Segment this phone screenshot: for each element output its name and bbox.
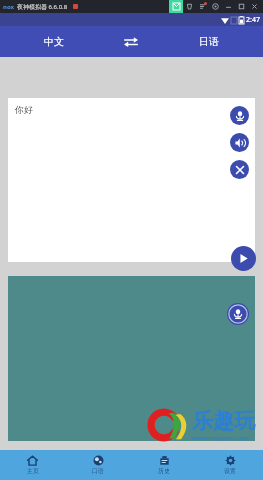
staticText: 中文 xyxy=(44,35,64,48)
button[interactable]: Voice input Japanese xyxy=(227,303,249,325)
button[interactable]: Messages xyxy=(169,0,183,13)
button[interactable]: Close xyxy=(248,0,261,13)
button[interactable]: Menu xyxy=(196,0,209,13)
button[interactable]: 中文 xyxy=(0,26,107,57)
button[interactable]: 历史 xyxy=(131,450,197,480)
staticText: nox xyxy=(3,3,14,11)
button[interactable]: 口语 xyxy=(65,450,131,480)
button[interactable]: Swap languages xyxy=(107,26,155,57)
staticText: 乐趣玩 xyxy=(192,408,255,434)
staticText: 主页 xyxy=(27,467,39,475)
button[interactable]: Voice input xyxy=(230,106,249,125)
button[interactable]: 日语 xyxy=(155,26,263,57)
staticText: 2:47 xyxy=(246,15,260,25)
button[interactable]: Speak text xyxy=(230,133,249,152)
staticText: 你好 xyxy=(15,104,33,115)
button[interactable]: 设置 xyxy=(197,450,263,480)
button[interactable]: 主页 xyxy=(0,450,65,480)
button[interactable]: Settings xyxy=(209,0,222,13)
staticText: 设置 xyxy=(224,467,236,475)
staticText: 口语 xyxy=(92,467,104,475)
staticText: 日语 xyxy=(199,35,219,48)
staticText: 历史 xyxy=(158,467,170,475)
button[interactable]: Clear text xyxy=(230,160,249,179)
staticText: 夜神模拟器 6.6.0.8 xyxy=(17,3,68,11)
staticText: www.lequwan.com xyxy=(192,434,249,442)
button[interactable]: Trash xyxy=(183,0,196,13)
button[interactable]: Minimize xyxy=(222,0,235,13)
button[interactable]: Maximize xyxy=(235,0,248,13)
button[interactable]: Translate xyxy=(231,246,256,271)
